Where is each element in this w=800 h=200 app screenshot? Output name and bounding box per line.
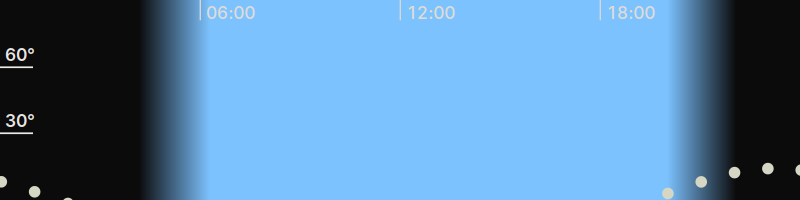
staticText: : (228, 2, 233, 23)
staticText: 6 (217, 2, 228, 23)
staticText: 60° (5, 44, 35, 65)
staticText: 0 (206, 2, 217, 23)
staticText: 0 (644, 2, 655, 23)
staticText: : (628, 2, 633, 23)
staticText: : (428, 2, 433, 23)
staticText: 0 (433, 2, 444, 23)
staticText: 0 (633, 2, 644, 23)
staticText: 1 (408, 2, 415, 23)
staticText: 8 (617, 2, 628, 23)
staticText: 1 (608, 2, 615, 23)
staticText: 0 (444, 2, 455, 23)
staticText: 2 (417, 2, 428, 23)
staticText: 0 (244, 2, 255, 23)
staticText: 0 (233, 2, 244, 23)
staticText: 30° (5, 110, 35, 131)
